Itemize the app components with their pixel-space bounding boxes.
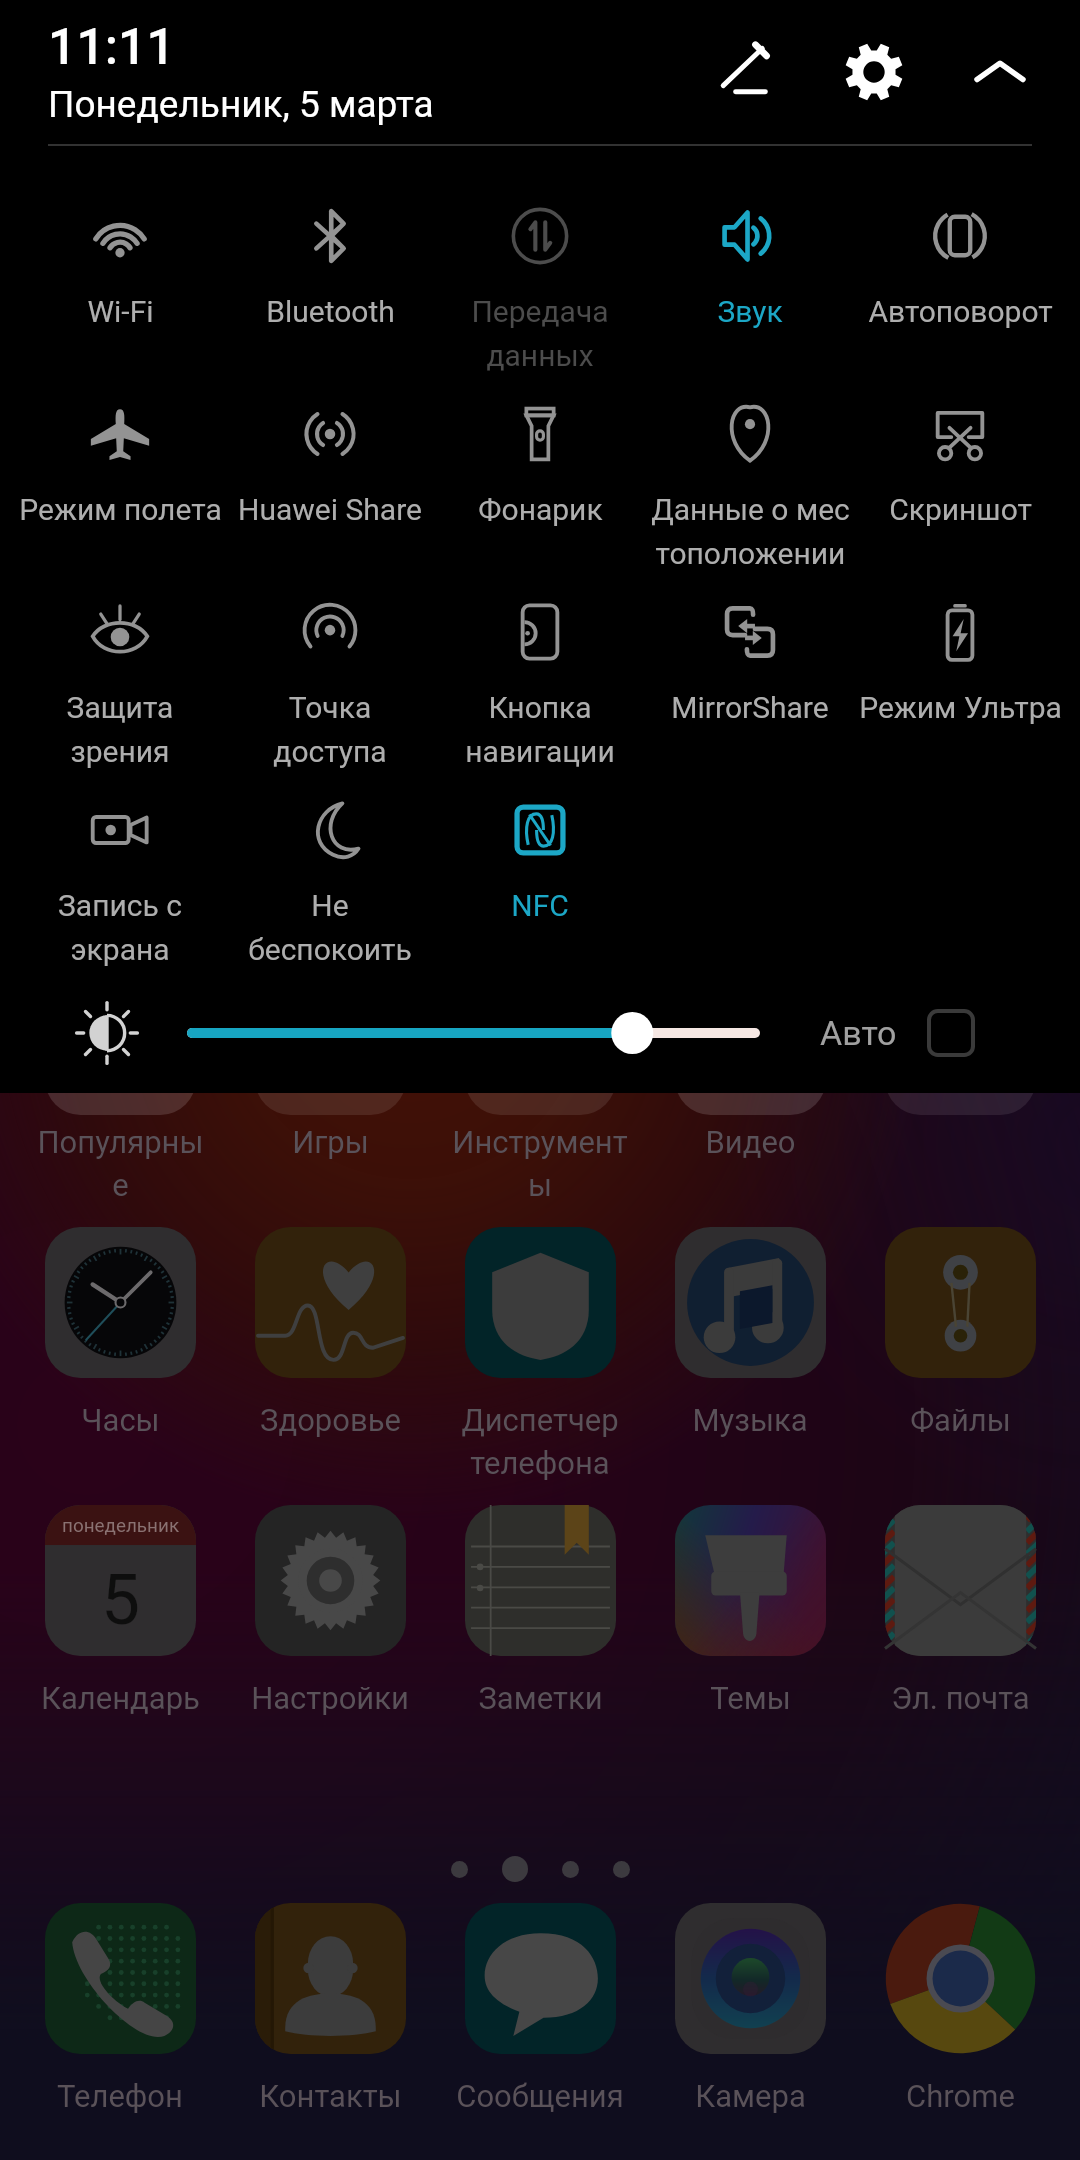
staticText: Wi-Fi	[87, 294, 154, 329]
staticText: Часы	[81, 1402, 160, 1438]
staticText: Заметки	[478, 1680, 603, 1716]
staticText: Здоровье	[260, 1402, 401, 1438]
staticText: Bluetooth	[266, 294, 395, 329]
button[interactable]: Автоповорот	[855, 205, 1065, 403]
button[interactable]: Запись с экрана	[15, 799, 225, 997]
button[interactable]: Защита зрения	[15, 601, 225, 799]
staticText: NFC	[511, 888, 569, 923]
staticText: Huawei Share	[238, 492, 422, 527]
staticText: Календарь	[41, 1680, 200, 1716]
button[interactable]: Bluetooth	[225, 205, 435, 403]
button[interactable]: Часы	[15, 1227, 225, 1438]
button[interactable]: Настройки	[225, 1505, 435, 1716]
staticText: Популярны е	[37, 1124, 204, 1204]
button[interactable]: Сообщения	[435, 1903, 645, 2114]
button[interactable]: Заметки	[435, 1505, 645, 1716]
staticText: Темы	[710, 1680, 791, 1716]
staticText: Игры	[292, 1124, 369, 1160]
button[interactable]: Камера	[645, 1903, 855, 2114]
staticText: Скриншот	[889, 492, 1032, 527]
staticText: Не беспокоить	[227, 888, 433, 967]
button[interactable]: Музыка	[645, 1227, 855, 1438]
staticText: Данные о мес тоположении	[651, 492, 850, 571]
staticText: Автоповорот	[868, 294, 1053, 329]
button[interactable]: Диспетчер телефона	[435, 1227, 645, 1482]
staticText: Настройки	[251, 1680, 409, 1716]
staticText: Режим Ультра	[859, 690, 1062, 725]
button[interactable]: Кнопка навигации	[435, 601, 645, 799]
staticText: 11:11	[48, 18, 175, 77]
button[interactable]: Скриншот	[855, 403, 1065, 601]
staticText: Эл. почта	[891, 1680, 1030, 1716]
button[interactable]: Точка доступа	[225, 601, 435, 799]
button[interactable]: Huawei Share	[225, 403, 435, 601]
staticText: Точка доступа	[273, 690, 387, 769]
staticText: Понедельник, 5 марта	[48, 83, 434, 126]
button[interactable]: Settings	[836, 34, 912, 110]
button[interactable]: Передача данных	[435, 205, 645, 403]
staticText: Сообщения	[456, 2078, 624, 2114]
staticText: Режим полета	[19, 492, 222, 527]
button[interactable]: Brightness	[72, 998, 142, 1068]
staticText: Инструмент ы	[452, 1124, 628, 1204]
staticText: Видео	[705, 1124, 796, 1160]
staticText: Камера	[695, 2078, 806, 2114]
button[interactable]: Файлы	[855, 1227, 1065, 1438]
button[interactable]: Данные о мес тоположении	[645, 403, 855, 601]
staticText: Передача данных	[437, 294, 643, 373]
button[interactable]: Авто	[820, 996, 973, 1070]
staticText: Запись с экрана	[17, 888, 223, 967]
button[interactable]: Режим Ультра	[855, 601, 1065, 799]
staticText: 5	[101, 1560, 141, 1641]
button[interactable]: Телефон	[15, 1903, 225, 2114]
staticText: Кнопка навигации	[437, 690, 643, 769]
button[interactable]: Wi-Fi	[15, 205, 225, 403]
button[interactable]: Chrome	[855, 1903, 1065, 2114]
staticText: Авто	[820, 1013, 897, 1053]
button[interactable]: Режим полета	[15, 403, 225, 601]
staticText: понедельник	[62, 1514, 180, 1536]
button[interactable]: Темы	[645, 1505, 855, 1716]
staticText: Диспетчер телефона	[437, 1402, 643, 1482]
staticText: Защита зрения	[17, 690, 223, 769]
button[interactable]: Эл. почта	[855, 1505, 1065, 1716]
button[interactable]: Контакты	[225, 1903, 435, 2114]
staticText: Телефон	[57, 2078, 183, 2114]
button[interactable]: Не беспокоить	[225, 799, 435, 997]
button[interactable]: Collapse	[962, 34, 1038, 110]
staticText: Музыка	[692, 1402, 808, 1438]
button[interactable]: Brightness slider	[182, 1006, 765, 1060]
button[interactable]: Фонарик	[435, 403, 645, 601]
button[interactable]: понедельник	[15, 1505, 225, 1716]
staticText: Chrome	[906, 2078, 1015, 2114]
button[interactable]: NFC	[435, 799, 645, 997]
staticText: Фонарик	[478, 492, 603, 527]
staticText: Файлы	[910, 1402, 1011, 1438]
button[interactable]: Звук	[645, 205, 855, 403]
button[interactable]: MirrorShare	[645, 601, 855, 799]
staticText: MirrorShare	[671, 690, 829, 725]
staticText: Контакты	[259, 2078, 402, 2114]
button[interactable]: Здоровье	[225, 1227, 435, 1438]
staticText: Звук	[717, 294, 783, 329]
button[interactable]: Edit quick settings	[710, 34, 786, 110]
